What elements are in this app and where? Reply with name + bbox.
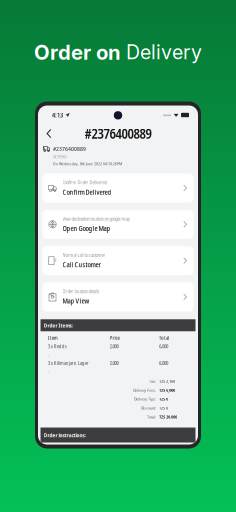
staticText: Confirm Order Delivered <box>62 179 106 186</box>
staticText: 6,000 <box>159 343 168 350</box>
staticText: 2,000 <box>109 359 118 367</box>
staticText: TZS 0 <box>159 405 168 411</box>
staticText: #2376400889 <box>53 144 86 153</box>
staticText: Delivery Fees: <box>133 387 156 393</box>
staticText: 3 x Redds <box>48 343 67 350</box>
staticText: TZS 20,000 <box>159 414 177 420</box>
staticText: - <box>48 368 49 375</box>
staticText: 2,000 <box>109 343 118 350</box>
staticText: #2376400889 <box>84 124 151 143</box>
staticText: TZS 6,000 <box>159 387 175 393</box>
staticText: Tax: <box>149 378 156 384</box>
staticText: Order instructions: <box>43 431 85 439</box>
staticText: Total <box>159 334 169 341</box>
staticText: Order on <box>34 40 126 64</box>
staticText: 6,000 <box>159 359 168 367</box>
button[interactable]: Confirm Order Delivered <box>42 173 193 202</box>
staticText: 4:13 <box>52 110 63 120</box>
staticText: TZS 0 <box>159 396 168 402</box>
staticText: - <box>48 351 49 358</box>
staticText: Normal call to customer <box>62 252 105 258</box>
staticText: Order Items: <box>43 322 72 329</box>
button[interactable]: View destination location on google map <box>42 210 193 239</box>
staticText: Confirm Delivered <box>62 187 111 197</box>
staticText: Map View <box>62 296 89 305</box>
staticText: OC39983 <box>53 154 67 159</box>
staticText: Delivery <box>126 40 202 64</box>
staticText: Open Google Map <box>62 223 110 233</box>
staticText: Order location details <box>62 288 99 295</box>
staticText: Delivery Tips: <box>134 396 156 402</box>
staticText: TZS 2,160 <box>159 378 175 384</box>
staticText: Discount: <box>141 405 156 411</box>
staticText: On Wednesday, 8th June 2022 04:10:26PM <box>53 161 122 166</box>
staticText: Price <box>109 334 119 341</box>
staticText: Total: <box>147 414 156 420</box>
staticText: Item <box>48 334 58 341</box>
button[interactable]: Back <box>38 124 60 142</box>
staticText: View destination location on google map <box>62 216 129 222</box>
staticText: Call Customer <box>62 260 100 269</box>
button[interactable]: Order location details <box>42 282 193 311</box>
button[interactable]: Normal call to customer <box>42 246 193 275</box>
staticText: 3 x Kilimanjaro Lager <box>48 359 89 367</box>
